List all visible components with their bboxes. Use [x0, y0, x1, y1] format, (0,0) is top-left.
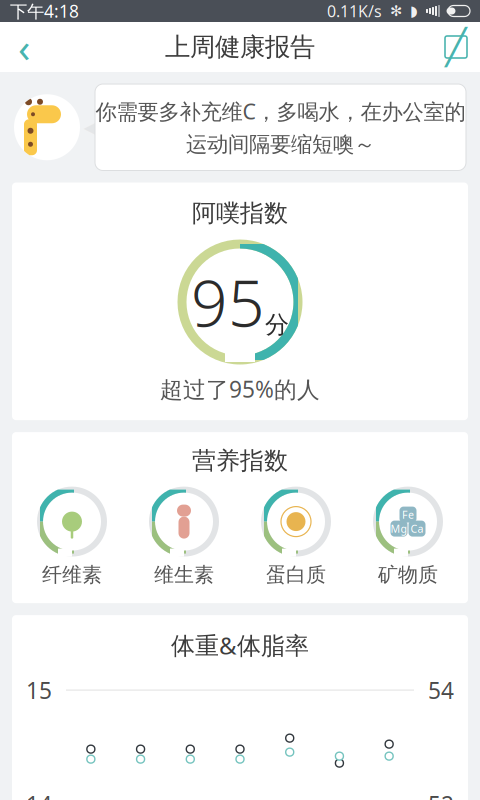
staticText: 营养指数	[192, 446, 288, 476]
staticText: 0.11K/s	[327, 0, 382, 22]
staticText: ✻	[390, 3, 402, 19]
staticText: ◀	[83, 117, 97, 138]
staticText: Ca	[410, 521, 423, 536]
staticText: 阿噗指数	[192, 198, 288, 228]
staticText: 52	[428, 789, 454, 800]
staticText: 14	[26, 789, 52, 800]
staticText: 54	[428, 675, 454, 705]
staticText: 体重&体脂率	[171, 629, 309, 661]
staticText: 运动间隔要缩短噢～	[186, 131, 375, 157]
staticText: Fe	[402, 507, 414, 522]
staticText: 95	[191, 259, 265, 344]
staticText: 纤维素	[42, 563, 102, 587]
staticText: 15	[26, 675, 52, 705]
button[interactable]: Back	[0, 22, 48, 72]
staticText: Mg	[390, 521, 407, 536]
staticText: 下午4:18	[10, 0, 79, 22]
staticText: 上周健康报告	[165, 31, 315, 62]
staticText: 超过了95%的人	[160, 374, 320, 404]
staticText: 维生素	[154, 563, 214, 587]
staticText: ◗	[410, 3, 418, 19]
staticText: 分	[265, 310, 289, 339]
staticText: ╱	[445, 27, 466, 67]
staticText: 蛋白质	[266, 563, 326, 587]
staticText: 你需要多补充维C，多喝水，在办公室的	[95, 97, 465, 125]
staticText: ‹	[18, 20, 30, 73]
staticText: 矿物质	[378, 563, 438, 587]
button[interactable]: Edit	[432, 22, 480, 72]
